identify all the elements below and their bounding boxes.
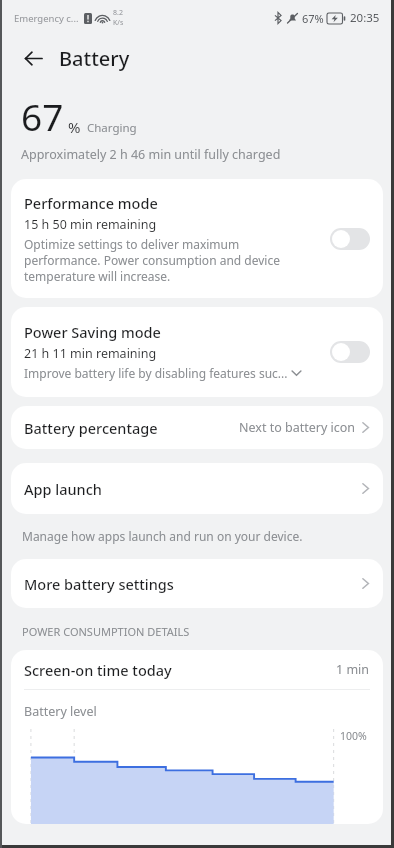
staticText: Battery: [59, 45, 130, 72]
staticText: 15 h 50 min remaining: [24, 216, 157, 233]
button[interactable]: Power Saving mode: [11, 307, 383, 397]
staticText: K/s: [113, 18, 124, 28]
staticText: More battery settings: [24, 574, 174, 594]
staticText: Manage how apps launch and run on your d…: [22, 528, 303, 544]
staticText: Charging: [87, 120, 137, 136]
button[interactable]: App launch: [11, 463, 383, 514]
staticText: 67: [21, 91, 64, 141]
staticText: Battery percentage: [24, 418, 158, 438]
staticText: Power Saving mode: [24, 322, 161, 342]
button[interactable]: Performance mode: [11, 179, 383, 298]
staticText: %: [68, 117, 81, 137]
button[interactable]: Toggle: [330, 228, 370, 250]
staticText: App launch: [24, 479, 102, 499]
staticText: 8.2: [113, 8, 123, 18]
button[interactable]: Screen-on time today: [11, 650, 383, 689]
staticText: 20:35: [350, 10, 380, 26]
staticText: Emergency c...: [14, 12, 79, 25]
button[interactable]: More battery settings: [11, 559, 383, 608]
staticText: Performance mode: [24, 193, 158, 213]
staticText: 67%: [302, 11, 324, 26]
staticText: Improve battery life by disabling featur…: [24, 365, 288, 381]
staticText: 100%: [340, 729, 367, 743]
staticText: Next to battery icon: [239, 419, 356, 436]
staticText: 1 min: [336, 661, 370, 678]
button[interactable]: Toggle: [330, 341, 370, 363]
button[interactable]: Battery percentage: [11, 406, 383, 449]
staticText: Battery level: [24, 703, 97, 720]
staticText: POWER CONSUMPTION DETAILS: [22, 624, 190, 639]
staticText: Optimize settings to deliver maximum per…: [24, 236, 303, 284]
staticText: Screen-on time today: [24, 660, 172, 680]
button[interactable]: Back: [18, 43, 48, 73]
staticText: Approximately 2 h 46 min until fully cha…: [21, 146, 281, 163]
staticText: 21 h 11 min remaining: [24, 345, 157, 362]
